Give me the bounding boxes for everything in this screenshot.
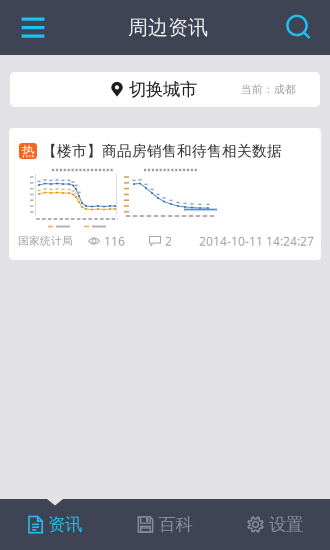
staticText: 百科 xyxy=(158,514,192,535)
staticText: 设置 xyxy=(269,514,303,535)
staticText: 当前：成都 xyxy=(241,83,296,96)
staticText: 切换城市 xyxy=(129,79,197,100)
button[interactable]: Search xyxy=(275,0,323,55)
button[interactable]: 百科 xyxy=(110,499,220,550)
staticText: 资讯 xyxy=(48,514,82,535)
button[interactable]: 切换城市 xyxy=(10,72,320,107)
button[interactable]: 资讯 xyxy=(0,499,110,550)
button[interactable]: Menu xyxy=(0,0,61,55)
staticText: 周边资讯 xyxy=(128,15,208,40)
staticText: 国家统计局 xyxy=(18,234,73,247)
staticText: 热 xyxy=(21,143,34,159)
staticText: 2 xyxy=(165,233,172,249)
button[interactable]: 设置 xyxy=(220,499,330,550)
button[interactable]: 热 xyxy=(9,128,321,260)
staticText: 116 xyxy=(104,233,125,249)
staticText: 【楼市】商品房销售和待售相关数据 xyxy=(42,142,282,160)
staticText: 2014-10-11 14:24:27 xyxy=(199,233,314,249)
